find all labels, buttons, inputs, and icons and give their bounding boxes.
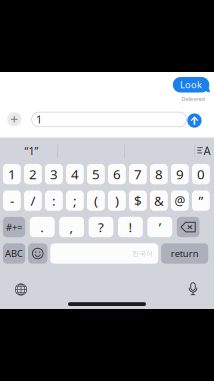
staticText: 7 (134, 165, 142, 183)
staticText: 0 (197, 165, 205, 183)
staticText: ? (98, 218, 104, 236)
button[interactable]: 4 (66, 164, 84, 184)
button[interactable]: Next keyboard (8, 276, 34, 302)
button[interactable]: 2 (24, 164, 42, 184)
staticText: / (30, 192, 35, 209)
staticText: ; (73, 192, 77, 209)
button[interactable]: 8 (150, 164, 168, 184)
button[interactable]: Add attachment (7, 112, 21, 126)
staticText: Look (180, 79, 202, 91)
staticText: 1 (36, 112, 42, 126)
staticText: 5 (92, 165, 100, 183)
button[interactable]: @ (171, 190, 189, 211)
button[interactable]: Dictation (180, 275, 206, 301)
staticText: 4 (71, 165, 79, 183)
staticText: ) (115, 192, 119, 209)
button[interactable]: Delete (177, 217, 199, 237)
button[interactable]: ( (87, 190, 105, 211)
staticText: - (10, 192, 14, 209)
staticText: & (154, 192, 164, 209)
button[interactable]: ? (89, 217, 113, 237)
button[interactable]: #+= (3, 217, 25, 237)
button[interactable]: 9 (171, 164, 189, 184)
staticText: , (70, 218, 74, 236)
button[interactable]: . (30, 217, 55, 237)
button[interactable]: ’ (147, 217, 172, 237)
button[interactable]: & (150, 190, 168, 211)
staticText: #+= (6, 221, 22, 233)
button[interactable]: 0 (192, 164, 210, 184)
staticText: 3 (50, 165, 58, 183)
staticText: return (171, 247, 199, 260)
staticText: 9 (176, 165, 184, 183)
staticText: 6 (113, 165, 121, 183)
staticText: @ (174, 193, 185, 208)
button[interactable]: Emoji (28, 243, 47, 264)
button[interactable]: 6 (108, 164, 126, 184)
button[interactable]: - (3, 190, 21, 211)
button[interactable]: 7 (129, 164, 147, 184)
staticText: 1 (8, 165, 16, 183)
button[interactable]: ABC (3, 243, 25, 264)
staticText: ( (94, 192, 98, 209)
button[interactable]: / (24, 190, 42, 211)
button[interactable]: $ (129, 190, 147, 211)
button[interactable]: : (45, 190, 63, 211)
staticText: 2 (29, 165, 37, 183)
staticText: $ (134, 192, 142, 209)
button[interactable]: , (59, 217, 84, 237)
staticText: ABC (5, 247, 23, 260)
button[interactable]: 1 (3, 164, 21, 184)
button[interactable]: Send (187, 113, 202, 128)
staticText: 한국어 (132, 249, 153, 258)
staticText: “1” (24, 144, 38, 158)
button[interactable]: ” (192, 190, 210, 211)
staticText: ! (128, 218, 132, 236)
button[interactable]: 5 (87, 164, 105, 184)
staticText: 8 (155, 165, 163, 183)
button[interactable]: Translate (194, 137, 214, 164)
staticText: : (52, 192, 56, 209)
button[interactable]: ! (118, 217, 143, 237)
staticText: Delivered (181, 95, 204, 103)
staticText: . (40, 218, 44, 236)
button[interactable]: return (161, 243, 208, 264)
button[interactable]: ) (108, 190, 126, 211)
staticText: ’ (159, 218, 161, 236)
button[interactable]: Space (50, 243, 158, 264)
button[interactable]: “1” (3, 137, 60, 164)
button[interactable]: ; (66, 190, 84, 211)
button[interactable]: 3 (45, 164, 63, 184)
staticText: ” (198, 192, 203, 209)
